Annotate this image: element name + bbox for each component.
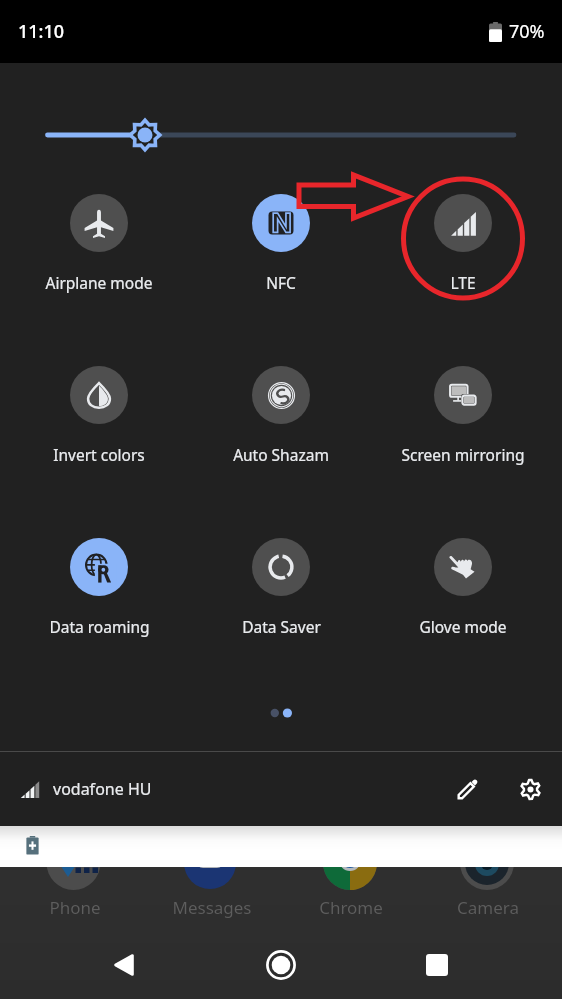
staticText: NFC	[266, 272, 296, 293]
staticText: Screen mirroring	[401, 444, 525, 465]
staticText: 70%	[509, 19, 545, 44]
button[interactable]: Back	[98, 939, 150, 991]
button[interactable]: Recent apps	[411, 939, 463, 991]
button[interactable]: Airplane mode	[8, 194, 190, 293]
button[interactable]: Settings	[506, 765, 554, 813]
staticText: Chrome	[319, 896, 383, 919]
staticText: Camera	[457, 896, 519, 919]
button[interactable]: Data roaming	[8, 538, 190, 637]
staticText: Auto Shazam	[233, 444, 329, 465]
button[interactable]: Invert colors	[8, 366, 190, 465]
button[interactable]: Auto Shazam	[190, 366, 372, 465]
button[interactable]: Home	[255, 939, 307, 991]
button[interactable]: LTE	[372, 194, 554, 293]
staticText: vodafone HU	[53, 778, 152, 800]
staticText: Data Saver	[242, 616, 321, 637]
staticText: Phone	[49, 896, 101, 919]
button[interactable]: Data Saver	[190, 538, 372, 637]
staticText: Glove mode	[419, 616, 507, 637]
button[interactable]: NFC	[190, 194, 372, 293]
staticText: LTE	[450, 272, 476, 293]
button[interactable]: Edit tiles	[443, 765, 491, 813]
button[interactable]: vodafone HU	[20, 778, 152, 800]
staticText: 11:10	[18, 19, 65, 44]
button[interactable]: Glove mode	[372, 538, 554, 637]
staticText: Messages	[172, 896, 252, 919]
staticText: Data roaming	[49, 616, 150, 637]
button[interactable]: Screen mirroring	[372, 366, 554, 465]
staticText: Invert colors	[53, 444, 145, 465]
staticText: Airplane mode	[45, 272, 153, 293]
